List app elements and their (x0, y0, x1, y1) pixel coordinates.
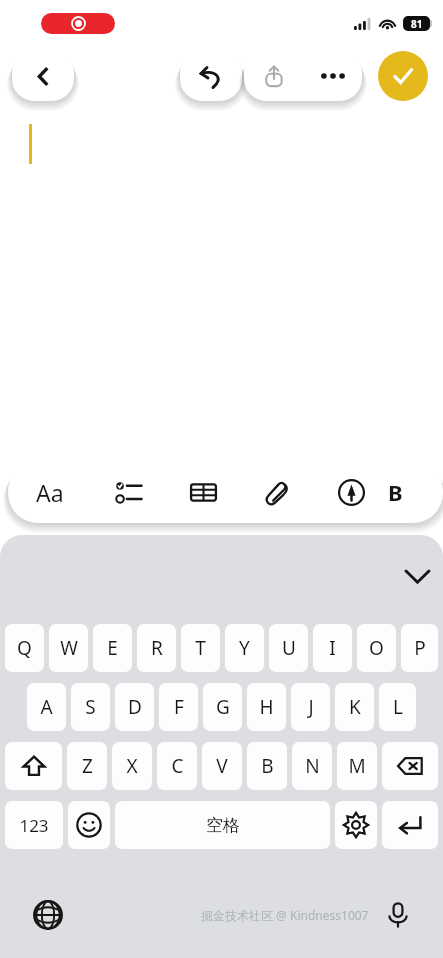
staticText: M (348, 753, 366, 779)
button[interactable]: C (157, 742, 197, 790)
staticText: T (195, 635, 206, 661)
button[interactable]: Backspace (382, 742, 438, 790)
button[interactable]: A (27, 683, 66, 731)
staticText: U (282, 635, 296, 661)
button[interactable]: Return (382, 801, 438, 849)
staticText: P (414, 635, 426, 661)
button[interactable]: 空格 (115, 801, 330, 849)
button[interactable]: More options (303, 51, 362, 101)
button[interactable]: Checklist (92, 461, 166, 523)
button[interactable]: Change language (22, 889, 74, 941)
staticText: B (261, 753, 274, 779)
button[interactable]: L (379, 683, 416, 731)
staticText: Q (17, 635, 32, 661)
staticText: X (126, 753, 138, 779)
staticText: H (259, 694, 274, 720)
button[interactable]: D (115, 683, 154, 731)
staticText: D (128, 694, 142, 720)
button[interactable]: B (247, 742, 287, 790)
button[interactable]: G (203, 683, 242, 731)
staticText: S (85, 694, 96, 720)
button[interactable]: X (112, 742, 152, 790)
staticText: C (171, 753, 184, 779)
button[interactable]: P (401, 624, 438, 672)
button[interactable]: Keyboard settings (335, 801, 377, 849)
staticText: F (174, 694, 184, 720)
button[interactable]: Draw (314, 461, 388, 523)
button[interactable]: Shift (5, 742, 62, 790)
button[interactable]: U (269, 624, 308, 672)
button[interactable]: W (49, 624, 88, 672)
staticText: 空格 (206, 815, 240, 836)
button[interactable]: M (337, 742, 377, 790)
button[interactable]: Attach file (240, 461, 314, 523)
staticText: Aa (36, 477, 64, 508)
staticText: Y (239, 635, 250, 661)
button[interactable]: B (388, 461, 428, 523)
button[interactable]: Z (67, 742, 107, 790)
staticText: R (151, 635, 163, 661)
button[interactable]: F (159, 683, 198, 731)
staticText: B (388, 477, 403, 507)
button[interactable]: Undo (180, 51, 242, 101)
staticText: 123 (19, 814, 49, 837)
button[interactable]: 123 (5, 801, 63, 849)
button[interactable]: K (335, 683, 374, 731)
button[interactable]: Share (244, 51, 303, 101)
staticText: E (107, 635, 118, 661)
button[interactable]: Y (225, 624, 264, 672)
staticText: A (40, 694, 53, 720)
staticText: L (393, 694, 403, 720)
staticText: J (308, 694, 314, 720)
staticText: G (216, 694, 230, 720)
button[interactable]: S (71, 683, 110, 731)
button[interactable]: Emoji (68, 801, 110, 849)
button[interactable]: Done (378, 51, 428, 101)
button[interactable]: Back (12, 51, 74, 101)
button[interactable]: N (292, 742, 332, 790)
staticText: K (349, 694, 361, 720)
button[interactable]: Voice input (375, 892, 421, 938)
button[interactable]: R (137, 624, 176, 672)
button[interactable]: Table (166, 461, 240, 523)
button[interactable]: O (357, 624, 396, 672)
staticText: V (216, 753, 228, 779)
button[interactable]: I (313, 624, 352, 672)
staticText: 掘金技术社区 @ Kindness1007 (201, 907, 369, 923)
button[interactable]: Screen recording (41, 13, 115, 34)
button[interactable]: J (291, 683, 330, 731)
staticText: N (305, 753, 320, 779)
staticText: W (60, 635, 78, 661)
button[interactable]: Q (5, 624, 44, 672)
button[interactable]: H (247, 683, 286, 731)
button[interactable]: Aa (8, 461, 92, 523)
button[interactable]: E (93, 624, 132, 672)
staticText: O (369, 635, 384, 661)
staticText: 81 (411, 17, 423, 31)
button[interactable]: V (202, 742, 242, 790)
staticText: I (329, 635, 336, 661)
button[interactable]: T (181, 624, 220, 672)
button[interactable]: Hide keyboard (396, 555, 438, 597)
staticText: Z (82, 753, 93, 779)
